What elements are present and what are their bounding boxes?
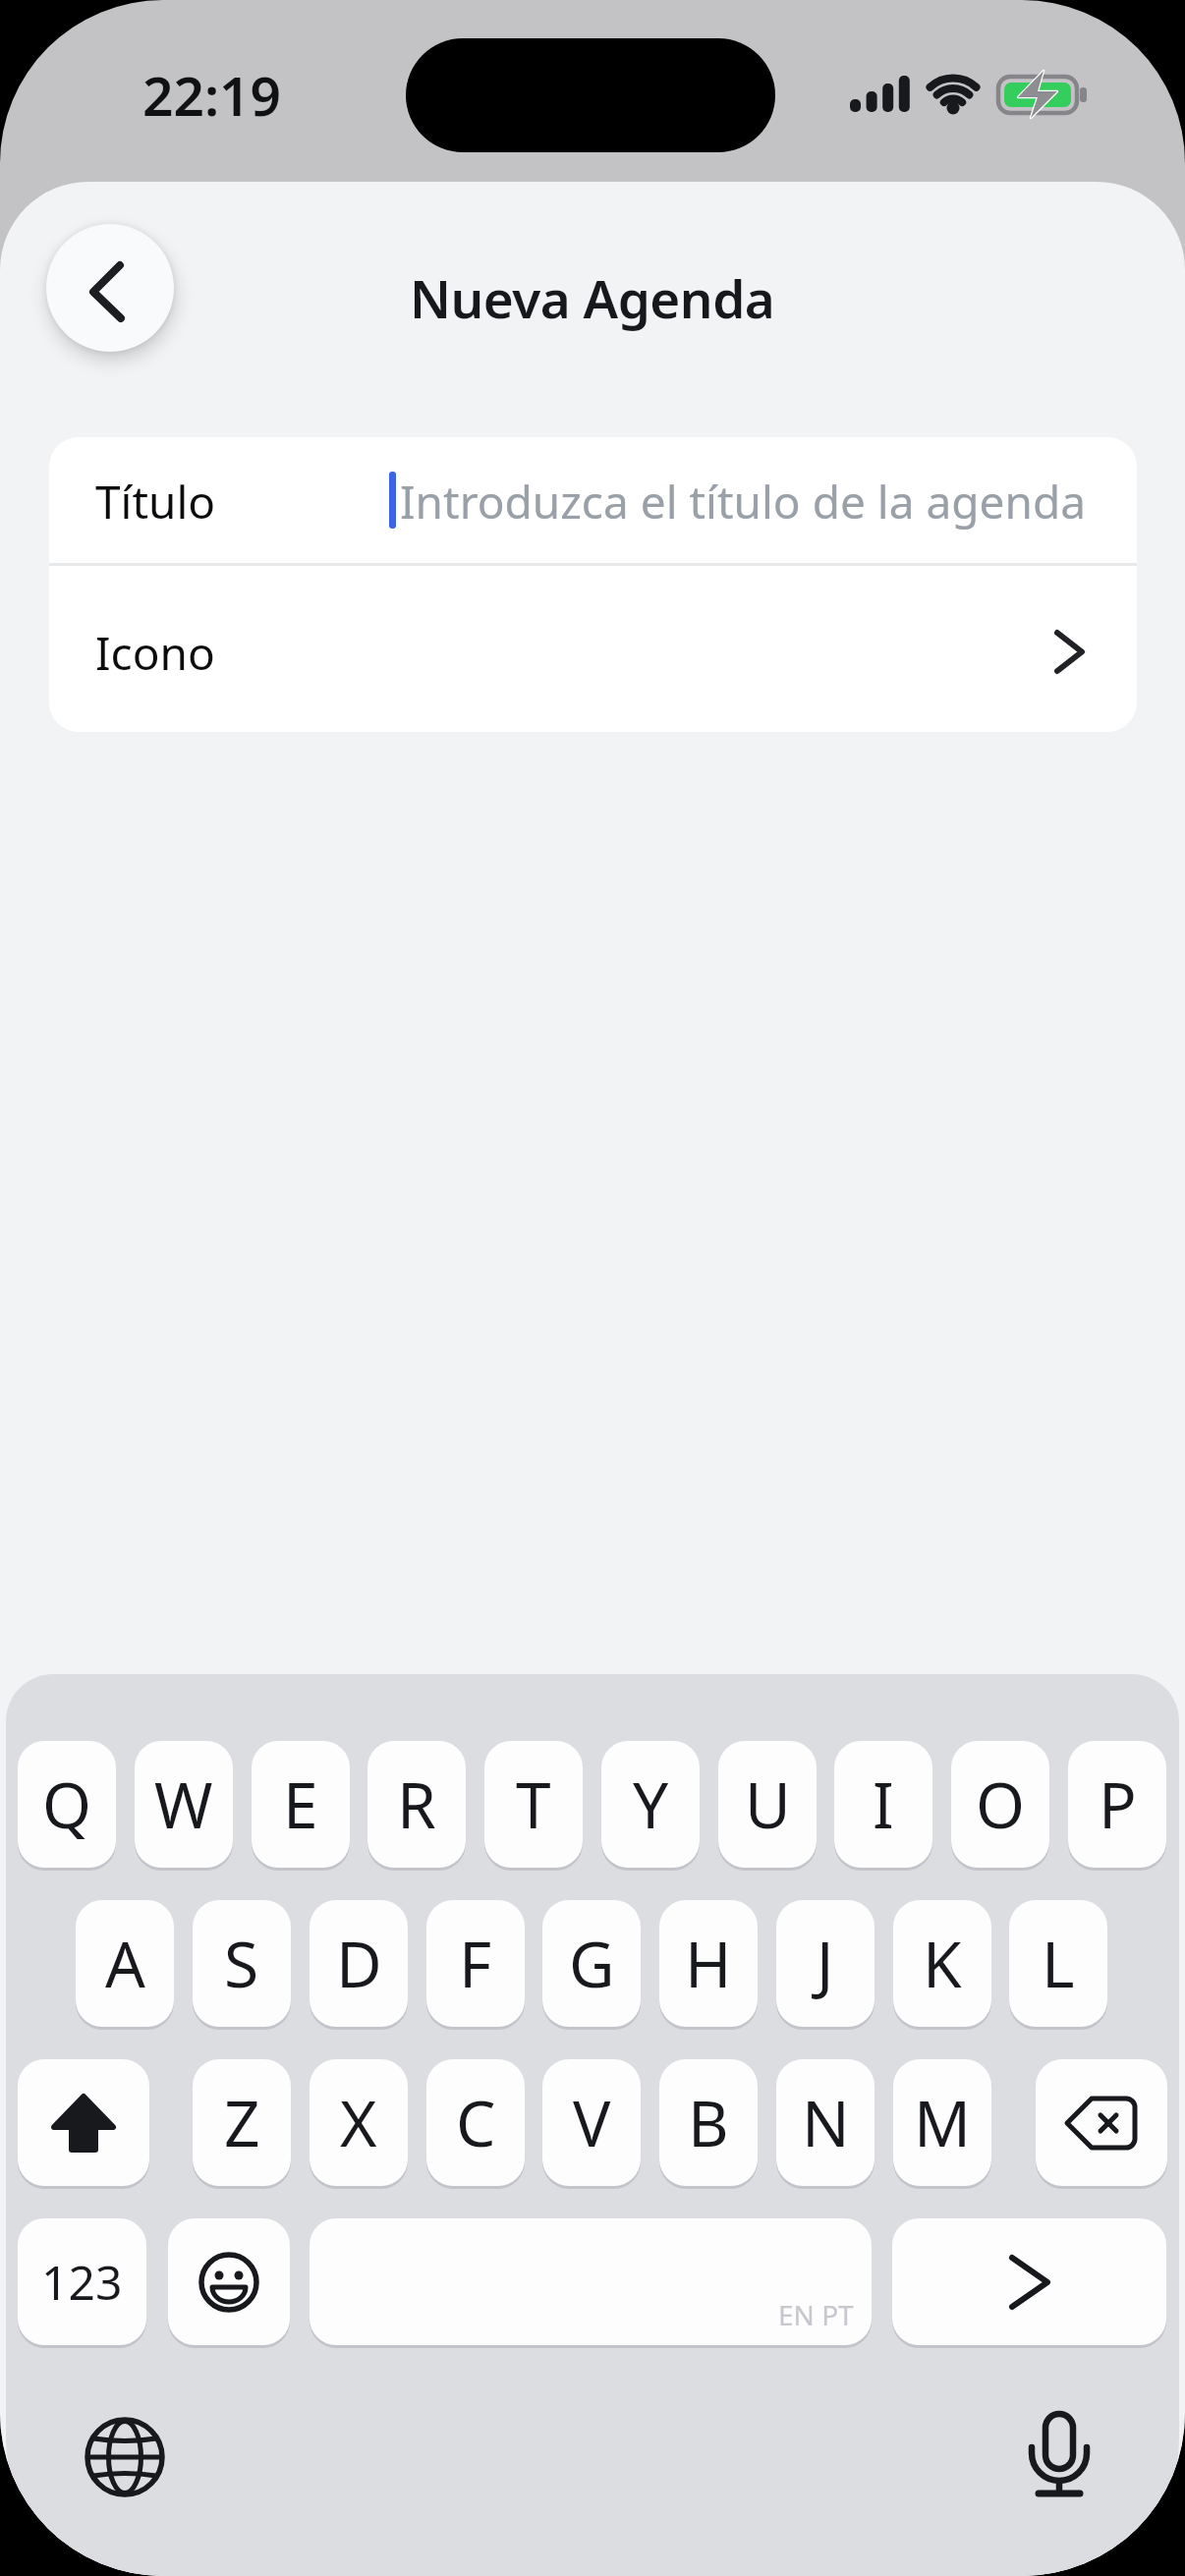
- staticText: F: [459, 1921, 492, 2006]
- staticText: H: [685, 1921, 732, 2006]
- staticText: N: [802, 2080, 850, 2165]
- staticText: Icono: [95, 622, 215, 681]
- button[interactable]: N: [776, 2059, 875, 2186]
- button[interactable]: EN PT: [310, 2218, 872, 2345]
- staticText: X: [340, 2080, 377, 2165]
- button[interactable]: E: [252, 1741, 350, 1868]
- button[interactable]: A: [76, 1900, 174, 2027]
- button[interactable]: P: [1068, 1741, 1166, 1868]
- staticText: 22:19: [142, 58, 282, 129]
- button[interactable]: [1015, 2411, 1103, 2499]
- staticText: EN PT: [778, 2296, 854, 2333]
- button[interactable]: X: [310, 2059, 408, 2186]
- button[interactable]: O: [951, 1741, 1049, 1868]
- staticText: 123: [41, 2250, 123, 2314]
- button[interactable]: Y: [601, 1741, 700, 1868]
- button[interactable]: Z: [193, 2059, 291, 2186]
- button[interactable]: U: [718, 1741, 817, 1868]
- button[interactable]: [168, 2218, 290, 2345]
- staticText: V: [573, 2080, 611, 2165]
- staticText: A: [105, 1921, 145, 2006]
- button[interactable]: F: [426, 1900, 525, 2027]
- button[interactable]: J: [776, 1900, 875, 2027]
- button[interactable]: W: [135, 1741, 233, 1868]
- staticText: Z: [224, 2080, 260, 2165]
- staticText: M: [914, 2080, 972, 2165]
- button[interactable]: [46, 224, 174, 352]
- button[interactable]: M: [893, 2059, 991, 2186]
- staticText: E: [283, 1762, 318, 1847]
- button[interactable]: [18, 2059, 149, 2186]
- button[interactable]: T: [484, 1741, 583, 1868]
- button[interactable]: Icono: [49, 566, 1137, 732]
- button[interactable]: [82, 2414, 168, 2500]
- staticText: D: [336, 1921, 382, 2006]
- button[interactable]: I: [834, 1741, 932, 1868]
- button[interactable]: V: [542, 2059, 641, 2186]
- staticText: U: [745, 1762, 791, 1847]
- staticText: R: [397, 1762, 436, 1847]
- staticText: Y: [633, 1762, 669, 1847]
- staticText: Q: [42, 1762, 91, 1847]
- staticText: L: [1042, 1921, 1075, 2006]
- staticText: K: [923, 1921, 962, 2006]
- button[interactable]: [892, 2218, 1166, 2345]
- button[interactable]: L: [1009, 1900, 1107, 2027]
- button[interactable]: S: [193, 1900, 291, 2027]
- staticText: B: [688, 2080, 729, 2165]
- button[interactable]: D: [310, 1900, 408, 2027]
- staticText: G: [569, 1921, 615, 2006]
- button[interactable]: [1036, 2059, 1167, 2186]
- staticText: Nueva Agenda: [410, 262, 775, 333]
- staticText: Introduzca el título de la agenda: [400, 471, 1087, 530]
- button[interactable]: B: [659, 2059, 758, 2186]
- staticText: P: [1099, 1762, 1137, 1847]
- button[interactable]: R: [367, 1741, 466, 1868]
- staticText: C: [456, 2080, 496, 2165]
- button[interactable]: K: [893, 1900, 991, 2027]
- button[interactable]: Título: [49, 437, 1137, 563]
- button[interactable]: Q: [18, 1741, 116, 1868]
- staticText: S: [224, 1921, 259, 2006]
- staticText: I: [873, 1762, 894, 1847]
- staticText: W: [154, 1762, 213, 1847]
- button[interactable]: G: [542, 1900, 641, 2027]
- button[interactable]: 123: [18, 2218, 146, 2345]
- staticText: O: [976, 1762, 1025, 1847]
- button[interactable]: H: [659, 1900, 758, 2027]
- staticText: Título: [95, 471, 216, 530]
- staticText: T: [516, 1762, 551, 1847]
- staticText: J: [817, 1921, 834, 2006]
- button[interactable]: C: [426, 2059, 525, 2186]
